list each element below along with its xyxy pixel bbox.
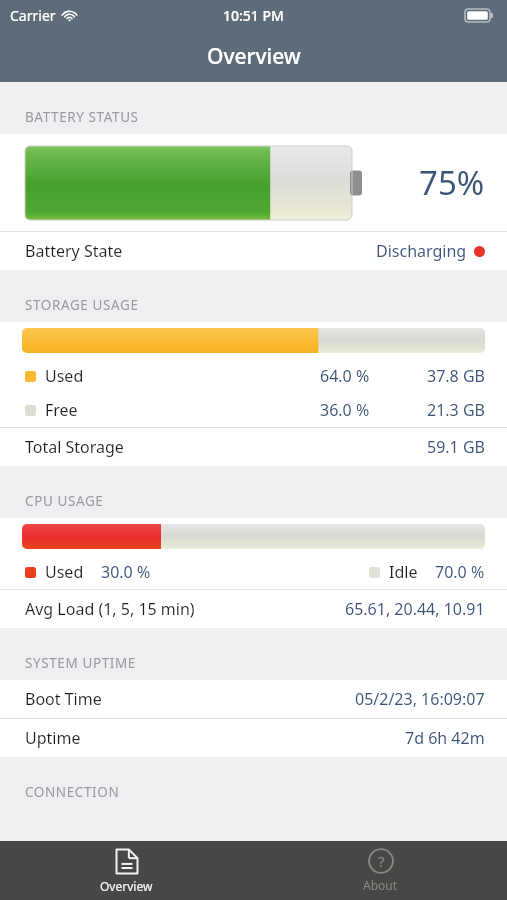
staticText: Discharging <box>376 240 467 262</box>
button[interactable]: Total Storage <box>0 428 507 466</box>
staticText: Total Storage <box>25 436 124 458</box>
staticText: 37.8 GB <box>427 365 485 387</box>
staticText: Boot Time <box>25 688 102 710</box>
button[interactable]: Overview tab <box>0 841 253 900</box>
staticText: 59.1 GB <box>427 436 485 458</box>
staticText: BATTERY STATUS <box>25 108 139 126</box>
staticText: 21.3 GB <box>427 399 485 421</box>
staticText: Free <box>45 399 78 421</box>
button[interactable]: Boot Time <box>0 680 507 718</box>
staticText: CPU USAGE <box>25 492 104 510</box>
button[interactable]: Avg Load (1, 5, 15 min) <box>0 590 507 628</box>
staticText: STORAGE USAGE <box>25 296 139 314</box>
button[interactable]: Used <box>0 555 507 589</box>
staticText: 10:51 PM <box>223 6 284 25</box>
staticText: Carrier <box>10 6 56 25</box>
staticText: Battery State <box>25 240 123 262</box>
staticText: 05/2/23, 16:09:07 <box>355 688 485 710</box>
staticText: 36.0 % <box>320 399 370 421</box>
button[interactable]: Free <box>0 393 507 427</box>
staticText: Used <box>45 561 84 583</box>
staticText: 64.0 % <box>320 365 370 387</box>
staticText: 30.0 % <box>101 561 151 583</box>
button[interactable]: About tab <box>253 841 507 900</box>
staticText: SYSTEM UPTIME <box>25 654 136 672</box>
staticText: CONNECTION <box>25 783 120 801</box>
button[interactable]: Used <box>0 359 507 393</box>
staticText: 7d 6h 42m <box>405 727 485 749</box>
staticText: Overview <box>207 42 301 71</box>
staticText: ? <box>378 851 385 871</box>
staticText: 70.0 % <box>435 561 485 583</box>
staticText: Used <box>45 365 84 387</box>
staticText: 65.61, 20.44, 10.91 <box>345 598 485 620</box>
staticText: Avg Load (1, 5, 15 min) <box>25 598 195 620</box>
button[interactable]: Uptime <box>0 719 507 757</box>
staticText: Overview <box>100 878 153 894</box>
staticText: 75% <box>419 160 485 205</box>
staticText: Idle <box>389 561 418 583</box>
button[interactable]: Battery State <box>0 232 507 270</box>
staticText: Uptime <box>25 727 81 749</box>
staticText: About <box>363 877 398 893</box>
